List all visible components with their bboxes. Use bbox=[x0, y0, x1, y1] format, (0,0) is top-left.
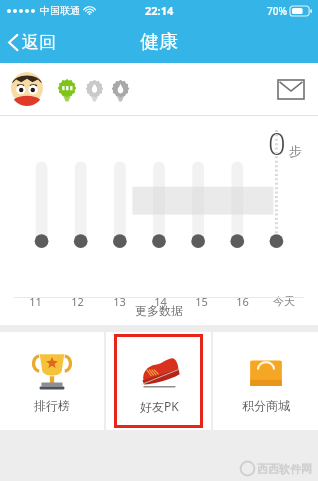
staticText: 返回 bbox=[22, 32, 56, 53]
button[interactable]: 返回 bbox=[0, 28, 66, 57]
staticText: 今天 bbox=[273, 294, 295, 308]
button[interactable]: New badge bbox=[56, 78, 78, 100]
staticText: 22:14 bbox=[145, 3, 174, 18]
staticText: 更多数据 bbox=[135, 303, 183, 318]
button[interactable]: Water badge bbox=[84, 79, 105, 100]
button[interactable]: Flame badge bbox=[110, 79, 131, 100]
button[interactable]: Profile avatar bbox=[10, 72, 44, 106]
staticText: 中国联通 bbox=[40, 4, 80, 17]
button[interactable]: 好友PK bbox=[106, 332, 211, 430]
button[interactable]: 更多数据 bbox=[0, 303, 318, 325]
staticText: 13 bbox=[113, 294, 126, 309]
staticText: 16 bbox=[236, 294, 249, 309]
staticText: 0 bbox=[268, 122, 286, 164]
staticText: 健康 bbox=[140, 30, 178, 54]
staticText: 14 bbox=[154, 294, 167, 309]
staticText: 12 bbox=[71, 294, 84, 309]
staticText: 排行榜 bbox=[34, 398, 70, 413]
staticText: 70% bbox=[267, 4, 287, 18]
button[interactable]: 排行榜 bbox=[0, 332, 104, 430]
staticText: 西西软件网 bbox=[257, 462, 312, 476]
staticText: 15 bbox=[195, 294, 208, 309]
staticText: 步 bbox=[289, 143, 302, 159]
staticText: 积分商城 bbox=[242, 398, 290, 413]
staticText: 好友PK bbox=[140, 398, 179, 414]
button[interactable]: 积分商城 bbox=[213, 332, 318, 430]
button[interactable]: Messages bbox=[274, 75, 308, 103]
staticText: 11 bbox=[29, 294, 42, 309]
